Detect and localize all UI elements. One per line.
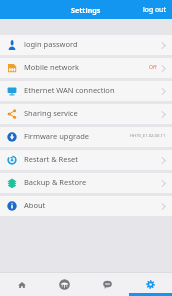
staticText: log out <box>143 5 166 14</box>
staticText: Restart & Reset <box>24 154 79 164</box>
button[interactable]: Restart & Reset <box>0 150 172 170</box>
button[interactable]: Messages <box>86 273 129 296</box>
staticText: Mobile network <box>24 62 80 72</box>
button[interactable]: Settings <box>129 273 172 296</box>
staticText: Firmware upgrade <box>24 131 90 141</box>
staticText: About <box>24 200 46 210</box>
button[interactable]: About <box>0 196 172 216</box>
staticText: Settings <box>71 5 101 15</box>
staticText: Off <box>149 64 157 71</box>
button[interactable]: log out <box>137 0 172 19</box>
button[interactable]: login password <box>0 35 172 55</box>
staticText: Sharing service <box>24 108 78 118</box>
button[interactable]: Wi-Fi <box>43 273 86 296</box>
button[interactable]: Ethernet WAN connection <box>0 81 172 101</box>
staticText: Backup & Restore <box>24 177 87 187</box>
staticText: HH70_E1.02.00.11 <box>130 133 166 139</box>
button[interactable]: Mobile network <box>0 58 172 78</box>
button[interactable]: Backup & Restore <box>0 173 172 193</box>
button[interactable]: Firmware upgrade <box>0 127 172 147</box>
button[interactable]: Sharing service <box>0 104 172 124</box>
staticText: Ethernet WAN connection <box>24 85 115 95</box>
staticText: login password <box>24 39 78 49</box>
button[interactable]: Home <box>0 273 43 296</box>
